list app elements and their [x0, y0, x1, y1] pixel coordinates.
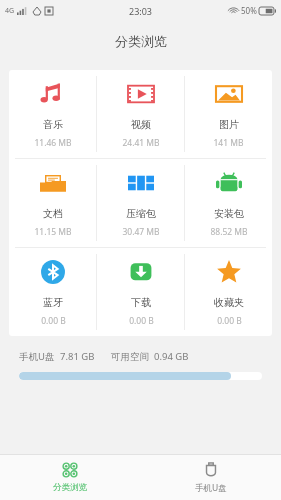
staticText: 手机U盘 — [19, 350, 55, 363]
staticText: 手机U盘 — [195, 482, 227, 494]
staticText: 7.81 GB — [60, 350, 95, 363]
staticText: 11.46 MB — [34, 137, 72, 149]
staticText: 分类浏览 — [53, 482, 87, 493]
staticText: 分类浏览 — [115, 33, 167, 49]
staticText: 23:03 — [129, 5, 153, 17]
button[interactable]: 下载 — [97, 248, 184, 336]
button[interactable]: 手机U盘 — [140, 455, 281, 500]
staticText: 可用空间 — [111, 351, 149, 363]
staticText: 下载 — [131, 296, 151, 309]
staticText: 图片 — [219, 118, 239, 131]
staticText: 压缩包 — [126, 207, 156, 220]
button[interactable]: 安装包 — [185, 159, 272, 247]
staticText: 0.00 B — [129, 315, 154, 327]
staticText: 88.52 MB — [210, 226, 248, 238]
staticText: 视频 — [131, 118, 151, 131]
staticText: 141 MB — [213, 137, 244, 149]
staticText: 0.00 B — [41, 315, 66, 327]
button[interactable]: 图片 — [185, 70, 272, 158]
staticText: 文档 — [43, 207, 63, 220]
staticText: 4G — [5, 6, 15, 16]
button[interactable]: 压缩包 — [97, 159, 184, 247]
staticText: 安装包 — [214, 207, 244, 220]
staticText: 11.15 MB — [34, 226, 72, 238]
button[interactable]: 蓝牙 — [9, 248, 96, 336]
button[interactable]: 分类浏览 — [0, 455, 140, 500]
button[interactable]: 收藏夹 — [185, 248, 272, 336]
staticText: 30.47 MB — [122, 226, 160, 238]
staticText: 24.41 MB — [122, 137, 160, 149]
staticText: 0.94 GB — [154, 350, 189, 363]
staticText: 音乐 — [43, 118, 63, 131]
button[interactable]: 音乐 — [9, 70, 96, 158]
button[interactable]: 视频 — [97, 70, 184, 158]
staticText: 50% — [241, 5, 257, 16]
button[interactable]: 文档 — [9, 159, 96, 247]
staticText: 蓝牙 — [43, 296, 63, 309]
staticText: 收藏夹 — [214, 296, 244, 309]
staticText: 0.00 B — [217, 315, 242, 327]
